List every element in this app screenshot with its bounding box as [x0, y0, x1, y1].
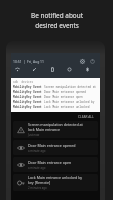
staticText: Lock Main entrance unlocked 8/11/2017 1.…: [44, 105, 100, 109]
staticText: Door Main entrance open: [28, 160, 72, 165]
staticText: a minute ago: [28, 166, 46, 170]
staticText: Door Main entrance opened: [28, 143, 76, 148]
button[interactable]: Door Main entrance open: [13, 157, 98, 172]
staticText: Just now: [28, 133, 40, 137]
staticText: 2 minutes ago: [28, 186, 47, 190]
button[interactable]: Quick toggle: [84, 66, 91, 73]
staticText: Lock Main entrance unlocked by: [28, 175, 83, 180]
button[interactable]: Quick toggle: [31, 66, 38, 73]
staticText: MobilityKey Event: [13, 100, 44, 104]
staticText: key [Remote]: [28, 180, 51, 185]
button[interactable]: CLEAR ALL: [78, 115, 100, 119]
staticText: 10:51 | Fri, Aug 11: [13, 59, 44, 64]
staticText: desired events: [35, 21, 79, 30]
staticText: Door Main entrance open 8/11/2017 1...: [44, 95, 100, 99]
staticText: adb devices: [13, 80, 34, 84]
button[interactable]: Door Main entrance opened: [13, 140, 98, 155]
button[interactable]: Screen manipulation detected at: [13, 121, 98, 138]
staticText: lock Main entrance: [28, 127, 60, 132]
button[interactable]: Power: [90, 59, 95, 64]
button[interactable]: Quick toggle: [66, 66, 73, 73]
staticText: MobilityKey Event: [13, 95, 44, 99]
staticText: MobilityKey Event: [13, 90, 44, 94]
staticText: MobilityKey Event: [13, 105, 44, 109]
staticText: MobilityKey Event: [13, 85, 44, 89]
staticText: a minute ago: [28, 149, 46, 153]
button[interactable]: Lock Main entrance unlocked by: [13, 174, 98, 191]
staticText: Screen manipulation detected at: [28, 122, 83, 127]
staticText: CLEAR ALL: [78, 115, 94, 119]
staticText: Screen manipulation detected at lock Mai…: [44, 85, 100, 89]
button[interactable]: Quick toggle: [49, 66, 56, 73]
button[interactable]: Settings: [80, 59, 85, 64]
staticText: Lock Main entrance unlocked by key 8/11.…: [44, 100, 100, 104]
staticText: Be notified about: [31, 11, 83, 20]
staticText: Door Main entrance opened 8/11/2017 1..: [44, 90, 100, 94]
button[interactable]: Quick toggle: [14, 66, 21, 73]
